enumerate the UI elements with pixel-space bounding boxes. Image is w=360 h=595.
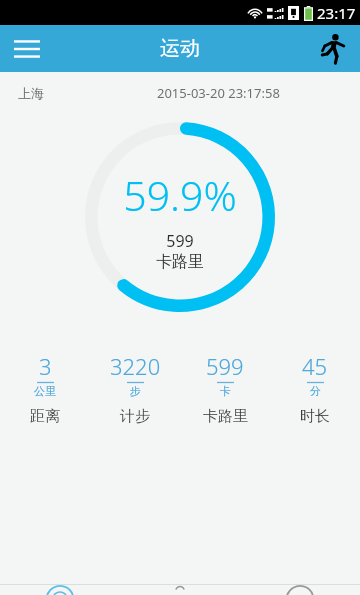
button[interactable]: Profile <box>240 585 360 595</box>
staticText: 59.9% <box>123 167 237 223</box>
staticText: 卡路里 <box>203 407 248 426</box>
button[interactable]: 3220 <box>90 349 180 428</box>
staticText: 卡 <box>220 384 231 398</box>
staticText: 时长 <box>300 407 330 426</box>
staticText: 2015-03-20 23:17:58 <box>157 84 280 102</box>
staticText: 计步 <box>120 407 150 426</box>
staticText: 3220 <box>110 351 161 381</box>
staticText: 步 <box>130 384 141 398</box>
staticText: 599 <box>166 230 194 252</box>
staticText: 45 <box>302 351 328 381</box>
staticText: 距离 <box>30 407 60 426</box>
staticText: 公里 <box>34 384 56 398</box>
button[interactable]: Sleep <box>120 585 240 595</box>
staticText: 599 <box>206 351 244 381</box>
staticText: 分 <box>310 384 321 398</box>
button[interactable]: Menu <box>6 28 48 70</box>
button[interactable]: 599 <box>180 349 270 428</box>
staticText: 卡路里 <box>156 252 204 272</box>
button[interactable]: 3 <box>0 349 90 428</box>
staticText: 运动 <box>160 36 200 61</box>
button[interactable]: Activity <box>0 585 120 595</box>
button[interactable]: Start running <box>312 28 354 70</box>
staticText: 23:17 <box>317 3 356 23</box>
staticText: 上海 <box>18 85 44 101</box>
button[interactable]: 45 <box>270 349 360 428</box>
staticText: 3 <box>39 351 52 381</box>
